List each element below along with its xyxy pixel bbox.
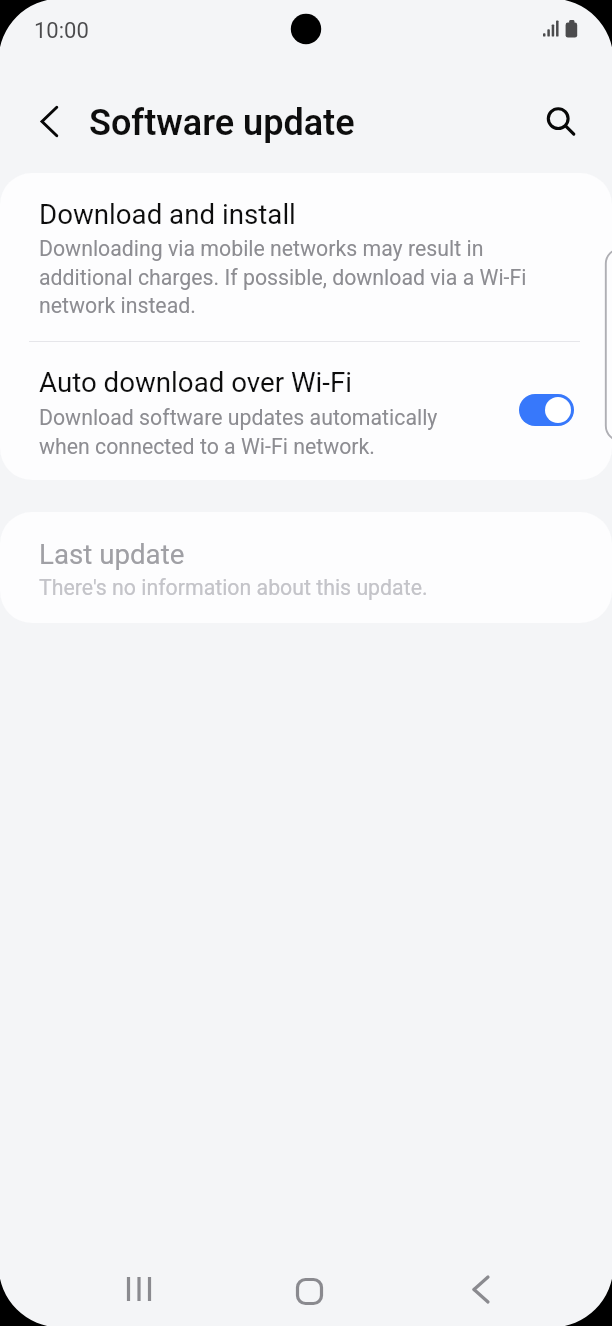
staticText: Auto download over Wi-Fi [39, 366, 352, 398]
staticText: 10:00 [34, 18, 89, 44]
button[interactable]: Download and install [0, 173, 612, 341]
button[interactable]: Home [270, 1250, 346, 1326]
button[interactable]: Navigate up [22, 94, 78, 150]
button[interactable]: Back [443, 1250, 519, 1326]
button[interactable]: Last update [0, 512, 612, 623]
button[interactable]: Auto download over Wi-Fi [519, 394, 574, 426]
button[interactable]: Auto download over Wi-Fi [0, 342, 612, 480]
staticText: Downloading via mobile networks may resu… [39, 236, 573, 318]
staticText: There's no information about this update… [39, 575, 428, 600]
staticText: Download software updates automatically … [39, 405, 457, 459]
button[interactable]: Search [531, 91, 587, 147]
button[interactable]: Recents [100, 1250, 176, 1326]
staticText: Software update [89, 102, 355, 144]
staticText: Last update [39, 538, 185, 570]
staticText: Download and install [39, 198, 296, 230]
